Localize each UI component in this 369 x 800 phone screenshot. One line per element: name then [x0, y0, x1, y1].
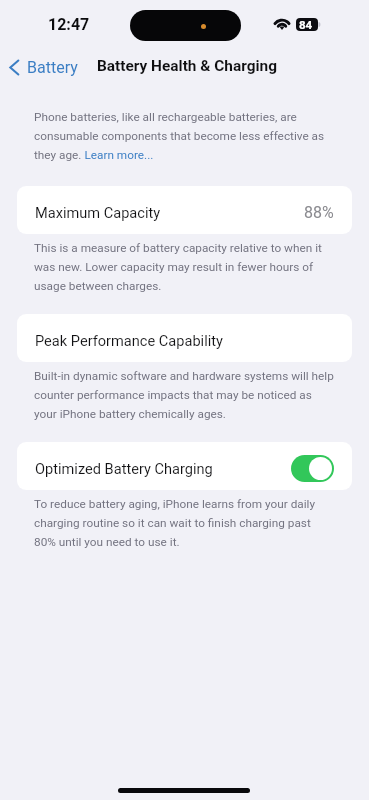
- staticText: Built-in dynamic software and hardware s…: [34, 369, 335, 421]
- staticText: Optimized Battery Charging: [35, 460, 213, 477]
- button[interactable]: Maximum Capacity: [17, 186, 352, 234]
- staticText: 12:47: [48, 15, 90, 34]
- button[interactable]: Battery: [9, 54, 78, 80]
- staticText: This is a measure of battery capacity re…: [34, 241, 335, 293]
- staticText: Maximum Capacity: [35, 204, 161, 221]
- button[interactable]: Peak Performance Capability: [17, 314, 352, 362]
- button[interactable]: Optimized Battery Charging: [17, 442, 352, 490]
- staticText: Battery: [27, 58, 78, 77]
- staticText: Phone batteries, like all rechargeable b…: [34, 110, 335, 162]
- button[interactable]: Optimized Battery Charging toggle: [291, 455, 334, 482]
- staticText: Battery Health & Charging: [97, 57, 277, 75]
- staticText: Peak Performance Capability: [35, 332, 223, 349]
- staticText: 88%: [304, 203, 334, 222]
- staticText: To reduce battery aging, iPhone learns f…: [34, 497, 335, 549]
- staticText: 84: [299, 18, 313, 31]
